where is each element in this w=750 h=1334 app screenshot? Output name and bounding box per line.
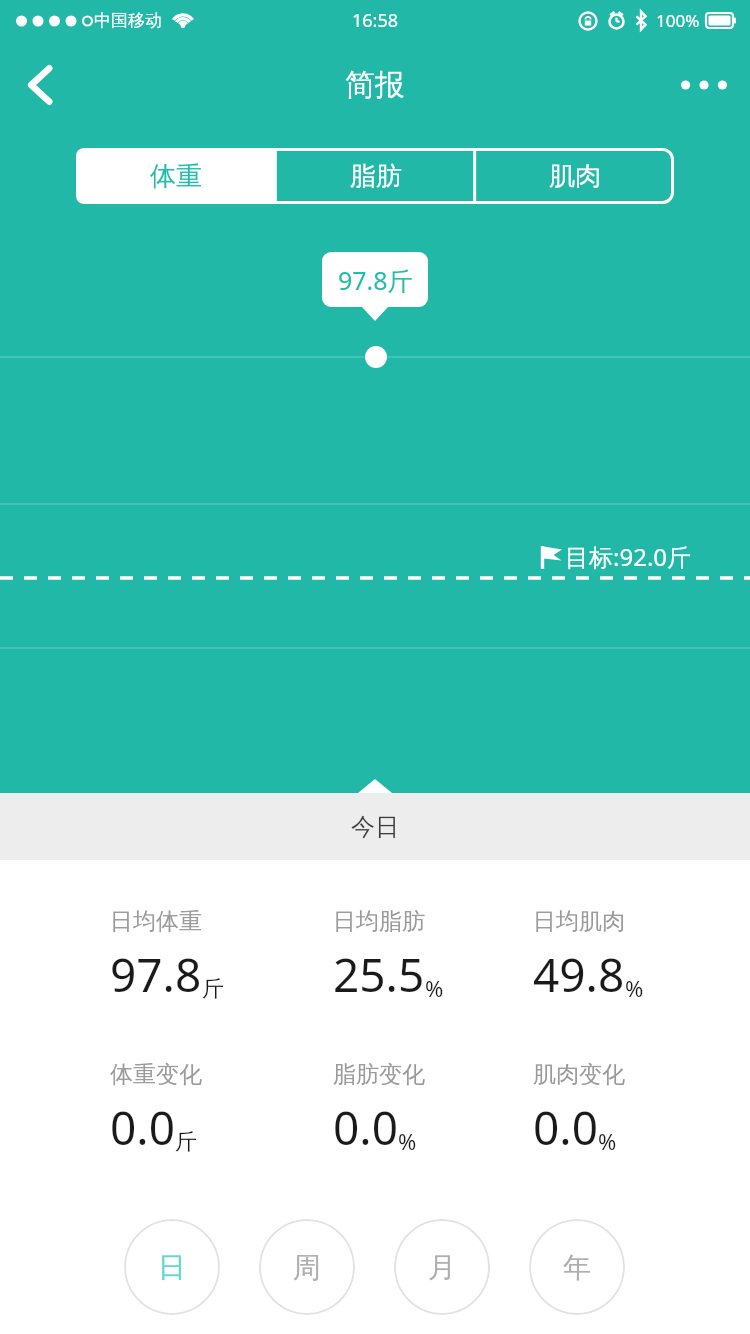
staticText: 100% (656, 9, 700, 32)
staticText: 脂肪 (350, 160, 402, 193)
staticText: 脂肪变化 (333, 1060, 425, 1089)
button[interactable]: 体重 (76, 148, 276, 204)
staticText: % (425, 973, 444, 1003)
button[interactable]: 日 (124, 1219, 220, 1315)
staticText: % (625, 973, 644, 1003)
button[interactable]: More options (668, 49, 740, 121)
button[interactable]: 脂肪变化 (333, 1060, 533, 1159)
staticText: 今日 (351, 812, 399, 842)
staticText: 斤 (202, 975, 224, 1003)
staticText: 0.0 (333, 1096, 398, 1159)
staticText: 日 (158, 1250, 186, 1285)
button[interactable]: 肌肉变化 (533, 1060, 733, 1159)
staticText: % (598, 1126, 617, 1156)
button[interactable]: 周 (259, 1219, 355, 1315)
button[interactable]: 今日 (0, 793, 750, 860)
staticText: 体重 (150, 160, 202, 193)
button[interactable]: 97.8斤 (322, 252, 428, 307)
staticText: 目标:92.0斤 (565, 540, 692, 573)
button[interactable]: 肌肉 (475, 148, 674, 204)
staticText: 97.8 (110, 943, 202, 1006)
staticText: 体重变化 (110, 1060, 202, 1089)
button[interactable]: 日均肌肉 (533, 907, 733, 1006)
staticText: 0.0 (533, 1096, 598, 1159)
button[interactable]: Back (8, 53, 72, 117)
staticText: % (398, 1126, 417, 1156)
staticText: 月 (428, 1250, 456, 1285)
button[interactable]: 目标:92.0斤 (540, 540, 692, 573)
staticText: 日均脂肪 (333, 907, 425, 936)
button[interactable]: 月 (394, 1219, 490, 1315)
staticText: 0.0 (110, 1096, 175, 1159)
staticText: 49.8 (533, 943, 625, 1006)
staticText: 周 (293, 1250, 321, 1285)
button[interactable]: 体重变化 (110, 1060, 310, 1159)
staticText: 肌肉 (549, 160, 601, 193)
staticText: 日均肌肉 (533, 907, 625, 936)
staticText: 日均体重 (110, 907, 202, 936)
staticText: 肌肉变化 (533, 1060, 625, 1089)
staticText: 25.5 (333, 943, 425, 1006)
staticText: 97.8斤 (338, 263, 413, 297)
staticText: 斤 (175, 1128, 197, 1156)
button[interactable]: 脂肪 (276, 148, 475, 204)
button[interactable]: 日均脂肪 (333, 907, 533, 1006)
staticText: 中国移动 (94, 10, 162, 31)
staticText: 16:58 (352, 8, 399, 33)
button[interactable]: 日均体重 (110, 907, 310, 1006)
staticText: 简报 (345, 66, 405, 104)
staticText: 年 (563, 1250, 591, 1285)
button[interactable]: 年 (529, 1219, 625, 1315)
